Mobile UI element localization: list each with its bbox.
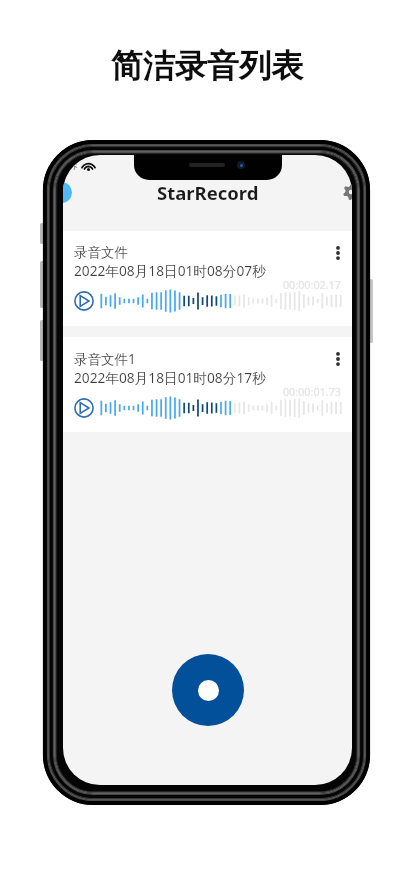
- button[interactable]: Settings: [341, 182, 352, 202]
- button[interactable]: Menu: [63, 182, 72, 203]
- button[interactable]: Play: [74, 291, 94, 311]
- staticText: 2022年08月18日01时08分17秒: [74, 368, 266, 387]
- staticText: 录音文件1: [74, 350, 136, 368]
- staticText: 00:00:02.17: [74, 277, 341, 292]
- button[interactable]: 录音文件1: [63, 337, 352, 432]
- button[interactable]: More options: [328, 243, 348, 263]
- button[interactable]: More options: [328, 349, 348, 369]
- button[interactable]: 录音文件: [63, 231, 352, 326]
- staticText: StarRecord: [157, 180, 259, 205]
- button[interactable]: Play: [74, 398, 94, 418]
- button[interactable]: Record: [172, 654, 244, 726]
- staticText: 简洁录音列表: [111, 46, 303, 86]
- staticText: 录音文件: [74, 244, 128, 261]
- staticText: 2022年08月18日01时08分07秒: [74, 261, 266, 280]
- staticText: 00:00:01.73: [74, 384, 341, 399]
